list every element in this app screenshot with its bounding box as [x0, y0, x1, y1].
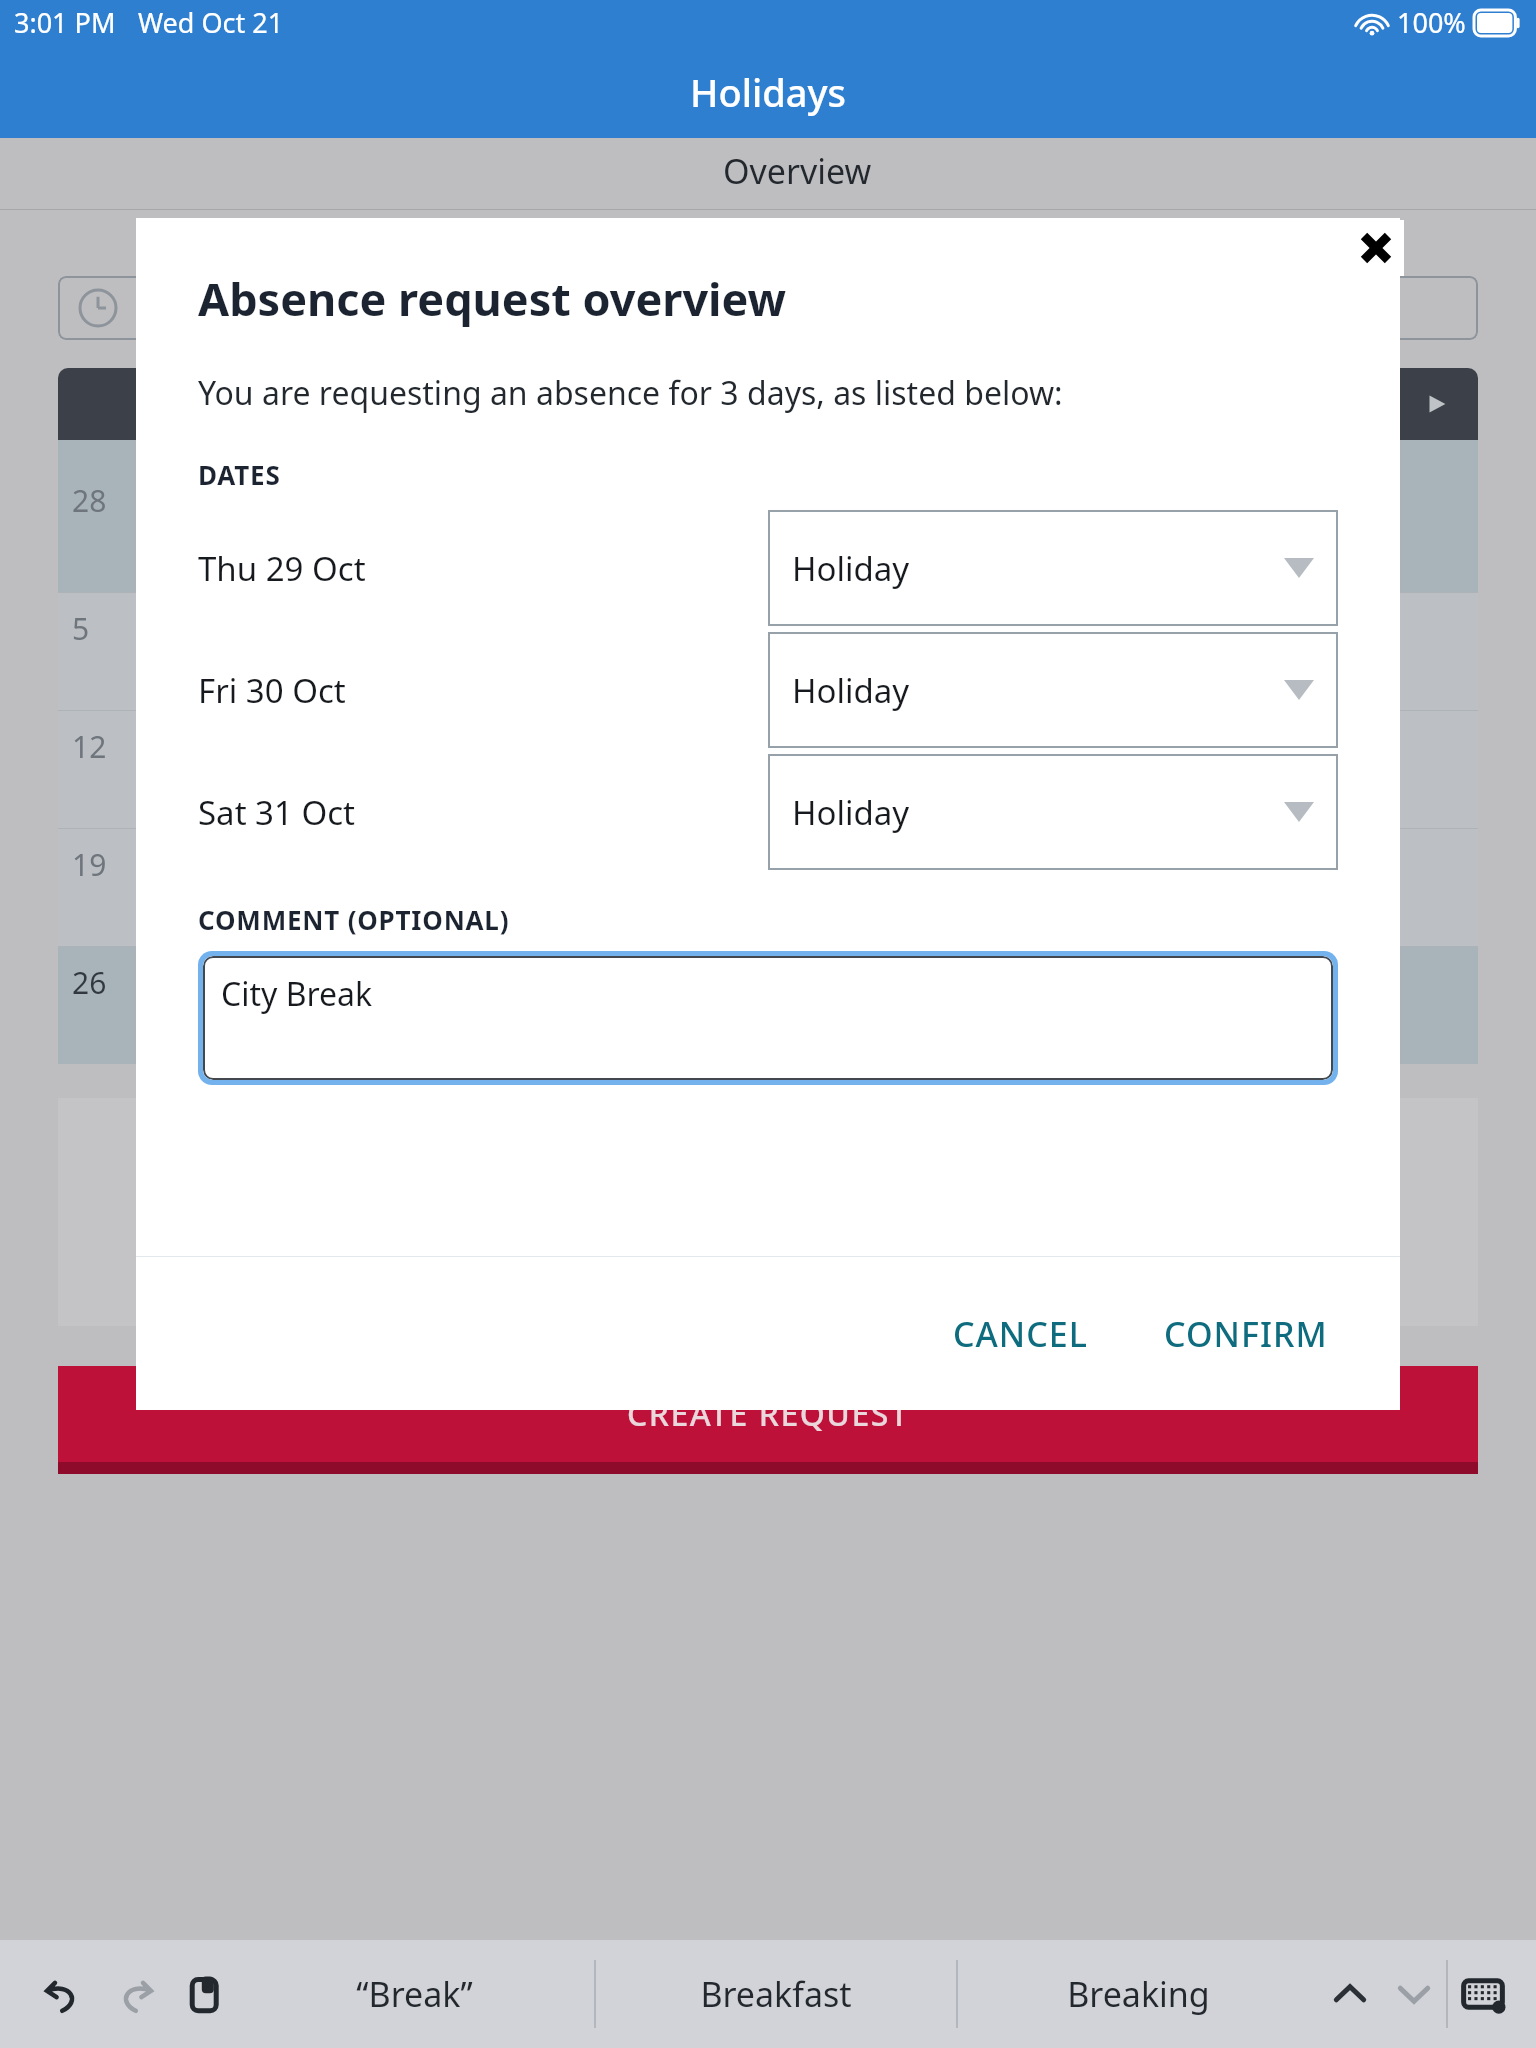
button[interactable]: Close: [1348, 220, 1404, 276]
staticText: 12: [72, 726, 107, 767]
button[interactable]: CANCEL: [927, 1293, 1114, 1375]
button[interactable]: 26: [58, 946, 1478, 1064]
staticText: DATES: [198, 457, 281, 492]
staticText: 100%: [1397, 4, 1466, 41]
staticText: Fri 30 Oct: [198, 668, 768, 713]
staticText: 19: [72, 844, 107, 885]
button[interactable]: CREATE REQUEST: [58, 1366, 1478, 1474]
staticText: Holiday: [792, 546, 910, 591]
button[interactable]: Next: [1382, 1962, 1446, 2026]
staticText: CREATE REQUEST: [627, 1392, 910, 1436]
button[interactable]: 5: [58, 592, 1478, 710]
button[interactable]: Clipboard: [176, 1965, 234, 2023]
staticText: Absence request overview: [198, 268, 787, 329]
button[interactable]: Overview: [58, 138, 1536, 210]
button[interactable]: Breakfast: [596, 1940, 956, 2048]
button[interactable]: Breaking: [958, 1940, 1318, 2048]
staticText: Breaking: [1067, 1971, 1210, 2017]
button[interactable]: Redo: [106, 1965, 164, 2023]
button[interactable]: Holiday: [768, 632, 1338, 748]
button[interactable]: Holiday: [768, 754, 1338, 870]
staticText: 3:01 PM: [14, 4, 116, 41]
staticText: COMMENT (OPTIONAL): [198, 902, 510, 937]
button[interactable]: CONFIRM: [1138, 1293, 1354, 1375]
staticText: Holiday: [792, 790, 910, 835]
button[interactable]: 19: [58, 828, 1478, 946]
staticText: “Break”: [356, 1971, 473, 2017]
button[interactable]: Previous: [1318, 1962, 1382, 2026]
button[interactable]: 31: [839, 1098, 1478, 1326]
staticText: Breakfast: [700, 1971, 852, 2017]
staticText: Thu 29 Oct: [198, 546, 768, 591]
staticText: 26: [72, 962, 107, 1003]
button[interactable]: Holiday: [768, 510, 1338, 626]
button[interactable]: 3: [58, 1098, 697, 1326]
staticText: 28: [72, 480, 107, 521]
staticText: CONFIRM: [1164, 1311, 1328, 1357]
staticText: You are requesting an absence for 3 days…: [198, 371, 1063, 415]
button[interactable]: 12: [58, 710, 1478, 828]
button[interactable]: [58, 276, 1478, 340]
staticText: CANCEL: [953, 1311, 1088, 1357]
staticText: Sat 31 Oct: [198, 790, 768, 835]
button[interactable]: 28: [58, 440, 1478, 592]
button[interactable]: Keyboard settings: [1448, 1959, 1518, 2029]
staticText: City Break: [221, 972, 373, 1016]
staticText: Wed Oct 21: [138, 4, 284, 41]
staticText: Holidays: [690, 66, 846, 118]
staticText: Holiday: [792, 668, 910, 713]
button[interactable]: City Break: [203, 956, 1333, 1080]
staticText: 5: [72, 608, 90, 649]
staticText: Overview: [723, 148, 872, 194]
button[interactable]: “Break”: [234, 1940, 594, 2048]
button[interactable]: Undo: [34, 1965, 92, 2023]
